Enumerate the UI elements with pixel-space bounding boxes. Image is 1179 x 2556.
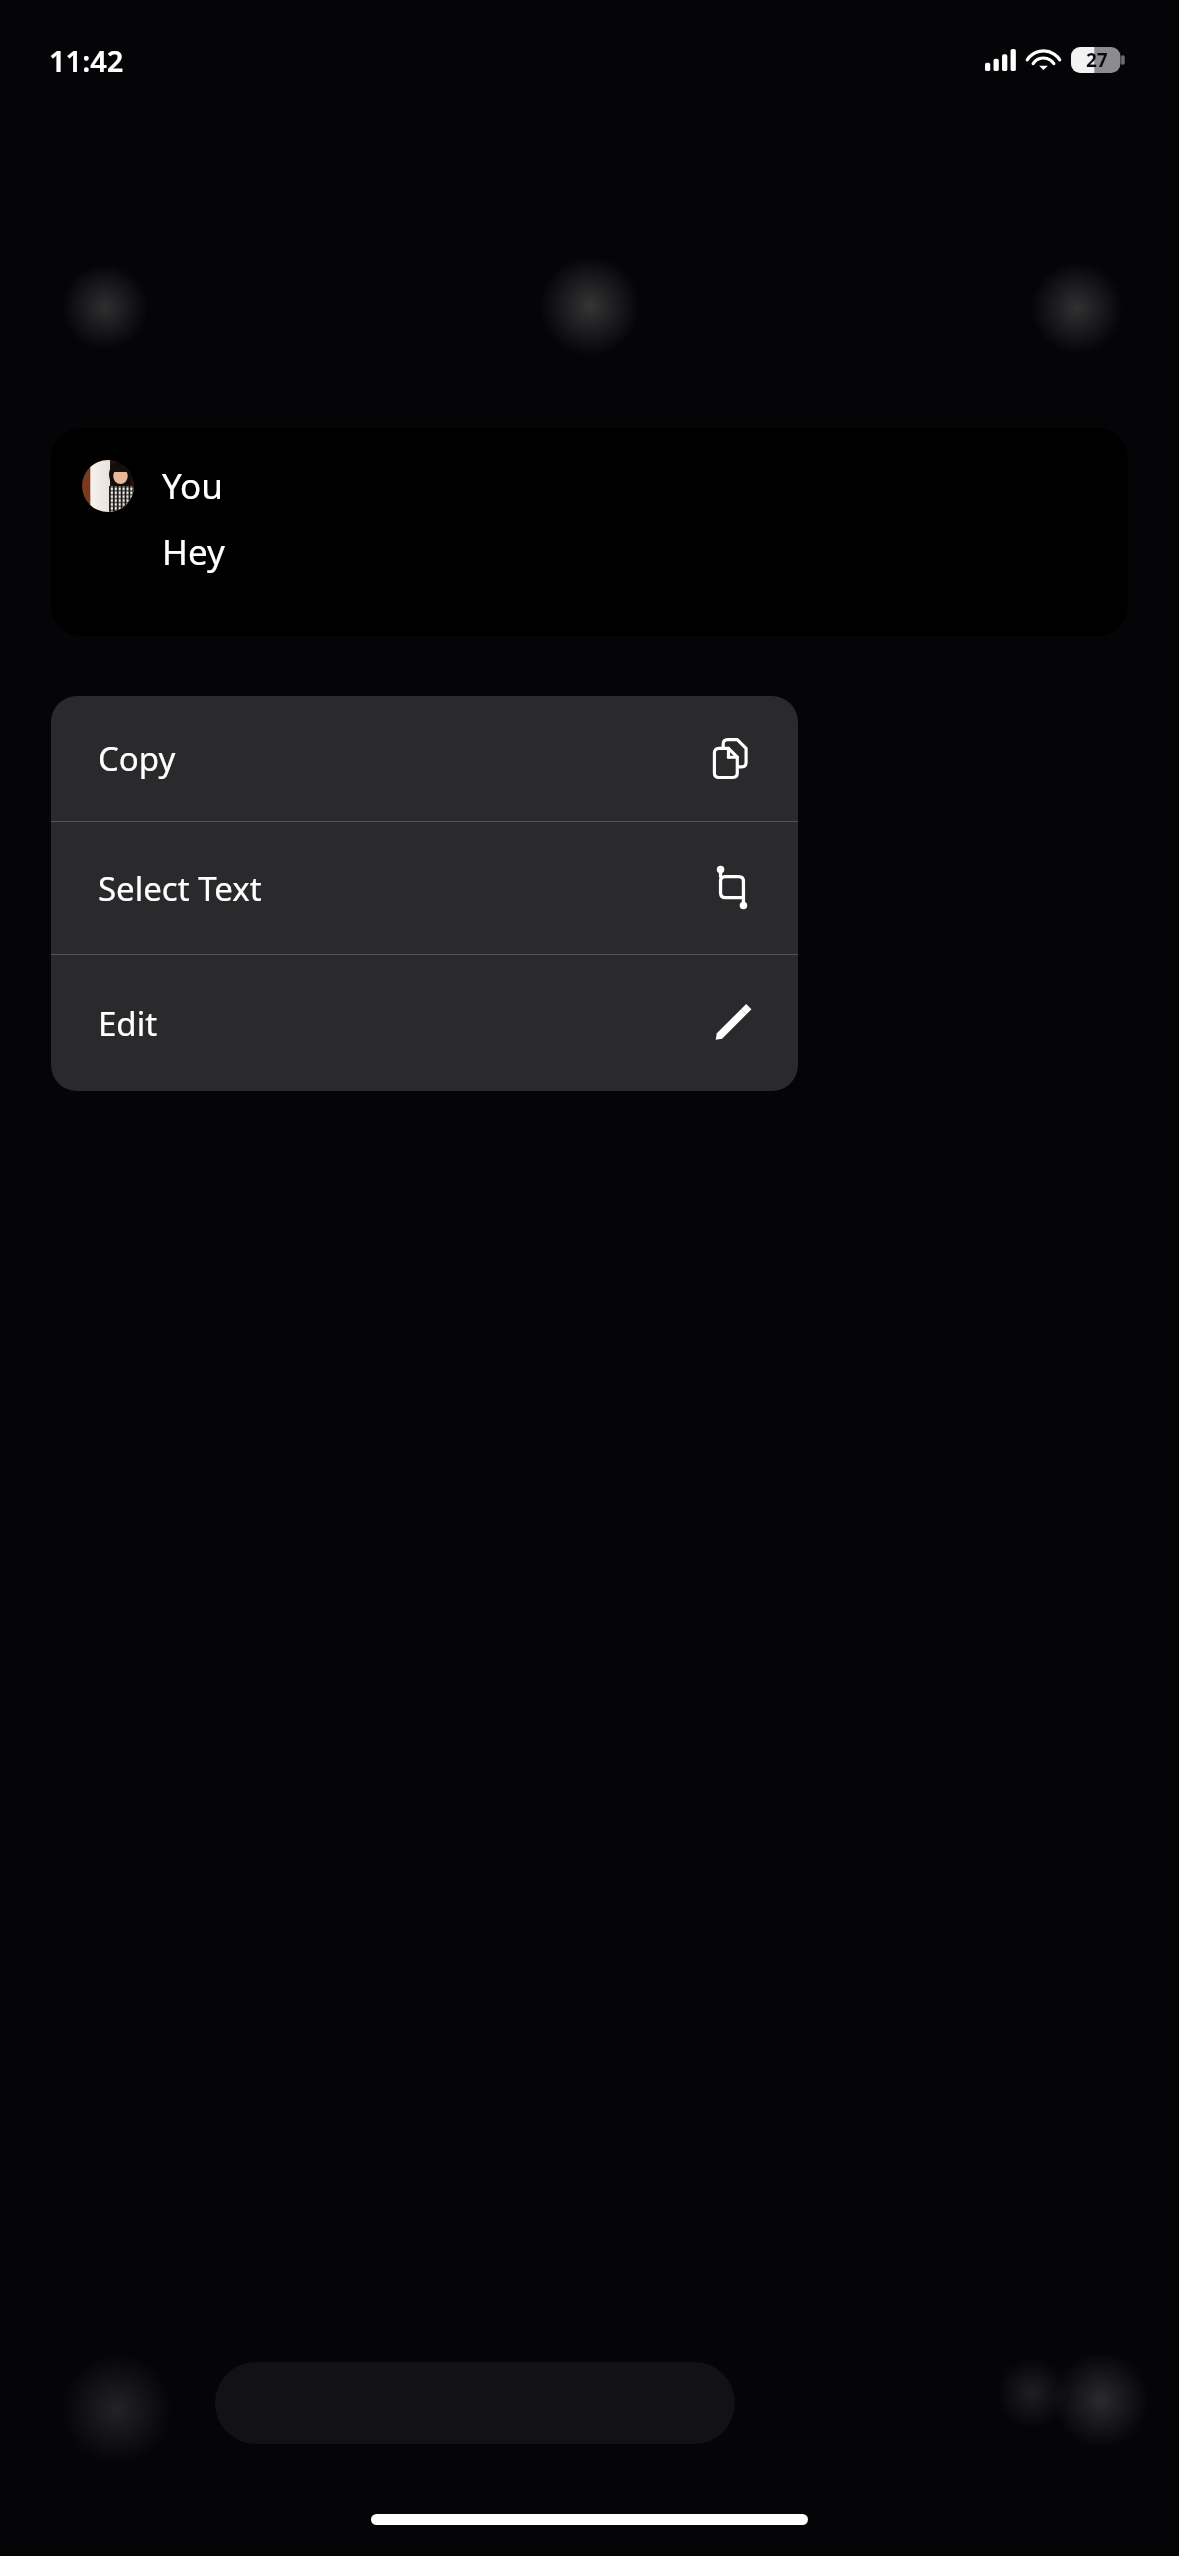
staticText: 11:42 [49, 41, 124, 80]
button[interactable]: Copy [51, 696, 798, 821]
button[interactable]: Select Text [51, 822, 798, 954]
staticText: Copy [98, 736, 176, 781]
button[interactable]: You [51, 428, 1128, 636]
staticText: Hey [162, 528, 225, 576]
button[interactable]: Edit [51, 955, 798, 1091]
staticText: Select Text [98, 866, 262, 911]
staticText: 27 [1086, 47, 1108, 73]
staticText: Edit [98, 1001, 158, 1046]
staticText: You [162, 462, 223, 510]
